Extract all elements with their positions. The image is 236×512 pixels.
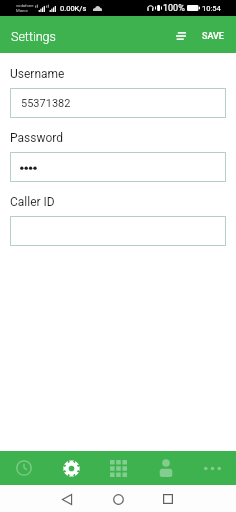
button[interactable]: Recent apps: [148, 486, 188, 512]
button[interactable]: Home: [98, 486, 138, 512]
staticText: SAVE: [202, 31, 224, 42]
button[interactable]: Recent calls: [0, 451, 48, 485]
button[interactable]: [10, 216, 226, 246]
button[interactable]: 55371382: [10, 88, 226, 118]
staticText: Settings: [11, 29, 56, 44]
staticText: 10:54: [202, 4, 221, 13]
button[interactable]: Settings: [48, 451, 95, 485]
button[interactable]: Sort: [169, 23, 195, 49]
staticText: Maroc: [16, 8, 28, 13]
button[interactable]: More: [189, 451, 236, 485]
button[interactable]: Back: [47, 486, 87, 512]
staticText: vodafone: [16, 3, 34, 8]
staticText: Username: [10, 67, 65, 81]
button[interactable]: Contacts: [142, 451, 189, 485]
button[interactable]: [10, 152, 226, 182]
staticText: Caller ID: [10, 195, 55, 209]
button[interactable]: Dial pad: [95, 451, 142, 485]
staticText: 0.00K/s: [60, 4, 87, 13]
staticText: 100%: [163, 3, 185, 14]
button[interactable]: SAVE: [196, 23, 230, 50]
staticText: Password: [10, 131, 64, 145]
staticText: 55371382: [21, 97, 71, 110]
